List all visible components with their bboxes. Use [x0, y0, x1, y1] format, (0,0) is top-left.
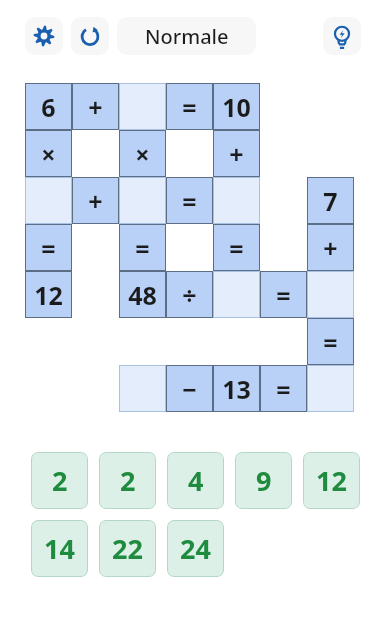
button[interactable]: 4 [167, 452, 224, 509]
staticText: 12 [34, 278, 63, 312]
button[interactable]: 12 [303, 452, 360, 509]
staticText: = [276, 372, 291, 406]
staticText: 2 [120, 462, 136, 499]
staticText: 14 [44, 530, 75, 567]
button[interactable]: + [307, 224, 354, 271]
button[interactable]: 2 [31, 452, 88, 509]
staticText: Normale [145, 23, 229, 50]
button[interactable]: Hint [323, 17, 361, 55]
button[interactable]: Restart [71, 17, 109, 55]
button[interactable]: Settings [25, 17, 63, 55]
button[interactable] [119, 177, 166, 224]
button[interactable] [307, 365, 354, 412]
staticText: 9 [256, 462, 272, 499]
staticText: 10 [222, 90, 251, 124]
button[interactable]: 2 [99, 452, 156, 509]
button[interactable]: ÷ [166, 271, 213, 318]
button[interactable]: = [166, 177, 213, 224]
staticText: 4 [188, 462, 204, 499]
button[interactable] [213, 271, 260, 318]
button[interactable]: = [25, 224, 72, 271]
staticText: 24 [180, 530, 211, 567]
staticText: × [41, 137, 56, 171]
button[interactable]: = [260, 271, 307, 318]
staticText: + [229, 137, 244, 171]
button[interactable]: Normale [117, 17, 256, 55]
staticText: 7 [323, 184, 338, 218]
button[interactable]: 48 [119, 271, 166, 318]
staticText: = [41, 231, 56, 265]
button[interactable]: = [119, 224, 166, 271]
staticText: = [182, 90, 197, 124]
button[interactable]: = [260, 365, 307, 412]
staticText: = [229, 231, 244, 265]
staticText: 22 [112, 530, 143, 567]
button[interactable] [119, 365, 166, 412]
button[interactable]: × [25, 130, 72, 177]
button[interactable]: 9 [235, 452, 292, 509]
button[interactable] [307, 271, 354, 318]
staticText: = [323, 325, 338, 359]
button[interactable]: + [72, 83, 119, 130]
staticText: + [88, 90, 103, 124]
button[interactable] [25, 177, 72, 224]
staticText: + [88, 184, 103, 218]
button[interactable]: − [166, 365, 213, 412]
button[interactable]: × [119, 130, 166, 177]
staticText: = [276, 278, 291, 312]
button[interactable]: 10 [213, 83, 260, 130]
staticText: 6 [41, 90, 56, 124]
staticText: 2 [52, 462, 68, 499]
button[interactable]: 13 [213, 365, 260, 412]
staticText: = [182, 184, 197, 218]
staticText: 12 [316, 462, 347, 499]
staticText: 13 [222, 372, 251, 406]
button[interactable]: + [72, 177, 119, 224]
staticText: × [135, 137, 150, 171]
staticText: 48 [128, 278, 157, 312]
staticText: = [135, 231, 150, 265]
button[interactable]: 6 [25, 83, 72, 130]
button[interactable]: 22 [99, 520, 156, 577]
button[interactable]: = [307, 318, 354, 365]
button[interactable]: = [166, 83, 213, 130]
button[interactable]: = [213, 224, 260, 271]
button[interactable]: 12 [25, 271, 72, 318]
staticText: − [182, 372, 197, 406]
button[interactable]: 14 [31, 520, 88, 577]
button[interactable]: 7 [307, 177, 354, 224]
button[interactable]: 24 [167, 520, 224, 577]
button[interactable] [213, 177, 260, 224]
button[interactable] [119, 83, 166, 130]
button[interactable]: + [213, 130, 260, 177]
staticText: ÷ [182, 278, 197, 312]
staticText: + [323, 231, 338, 265]
